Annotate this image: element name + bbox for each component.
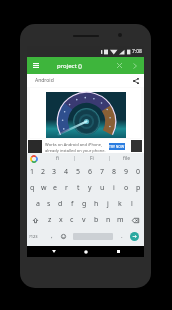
staticText: 8 (112, 167, 117, 177)
button[interactable]: z (44, 212, 55, 228)
button[interactable] (30, 88, 141, 138)
staticText: p (136, 183, 141, 193)
button[interactable]: y (84, 180, 96, 196)
staticText: project () (57, 62, 82, 70)
button[interactable]: 8 (108, 164, 120, 180)
button[interactable]: Close (111, 57, 127, 74)
staticText: TRY NOW (109, 144, 125, 149)
button[interactable]: b (90, 212, 102, 228)
button[interactable]: g (78, 196, 90, 212)
staticText: t (77, 183, 80, 193)
button[interactable]: . (116, 228, 128, 244)
staticText: . (121, 232, 123, 240)
staticText: 3 (52, 167, 57, 177)
button[interactable]: c (66, 212, 78, 228)
button[interactable]: fi (41, 153, 74, 164)
button[interactable]: s (43, 196, 54, 212)
button[interactable]: n (102, 212, 114, 228)
staticText: 2 (41, 167, 46, 177)
button[interactable]: o (120, 180, 132, 196)
staticText: v (82, 215, 86, 225)
button[interactable]: 0 (132, 164, 144, 180)
staticText: file (123, 155, 131, 162)
staticText: z (48, 215, 52, 225)
staticText: s (47, 199, 51, 209)
button[interactable]: 5 (72, 164, 84, 180)
staticText: g (82, 199, 87, 209)
staticText: i (113, 183, 115, 193)
staticText: 0 (136, 167, 141, 177)
button[interactable]: Forward (127, 57, 143, 74)
staticText: already installed on your phone. (45, 148, 106, 153)
button[interactable]: Backspace (126, 212, 144, 228)
staticText: k (118, 199, 122, 209)
button[interactable]: f (66, 196, 78, 212)
button[interactable]: t (72, 180, 84, 196)
staticText: f (71, 199, 74, 209)
button[interactable]: 4 (60, 164, 72, 180)
staticText: u (100, 183, 105, 193)
staticText: 5 (76, 167, 81, 177)
staticText: 6 (88, 167, 93, 177)
staticText: 9 (124, 167, 129, 177)
staticText: h (94, 199, 99, 209)
button[interactable]: k (114, 196, 126, 212)
button[interactable]: Emoji (57, 228, 69, 244)
button[interactable]: j (102, 196, 114, 212)
button[interactable]: 9 (120, 164, 132, 180)
button[interactable]: , (46, 228, 58, 244)
staticText: m (117, 215, 124, 225)
staticText: o (124, 183, 129, 193)
staticText: x (59, 215, 63, 225)
staticText: fi (56, 155, 60, 162)
button[interactable]: 2 (38, 164, 49, 180)
button[interactable]: p (132, 180, 144, 196)
button[interactable]: Home (80, 246, 92, 257)
button[interactable]: Recents (112, 246, 124, 257)
button[interactable]: w (38, 180, 49, 196)
staticText: ?123 (29, 234, 38, 239)
button[interactable]: Shift (27, 212, 44, 228)
button[interactable]: q (27, 180, 38, 196)
staticText: j (107, 199, 109, 209)
button[interactable]: m (114, 212, 126, 228)
staticText: q (30, 183, 35, 193)
button[interactable]: Android (29, 74, 144, 87)
button[interactable]: 1 (27, 164, 38, 180)
button[interactable]: Fi (75, 153, 109, 164)
button[interactable]: d (54, 196, 66, 212)
staticText: n (106, 215, 111, 225)
button[interactable]: i (108, 180, 120, 196)
button[interactable]: 6 (84, 164, 96, 180)
staticText: Works on Android and iPhone, (45, 142, 103, 147)
staticText: , (51, 232, 53, 240)
staticText: 7:08 (132, 48, 142, 55)
button[interactable]: u (96, 180, 108, 196)
button[interactable]: ?123 (27, 228, 39, 244)
button[interactable]: v (78, 212, 90, 228)
staticText: c (70, 215, 74, 225)
button[interactable]: Enter (127, 228, 141, 244)
staticText: a (36, 199, 40, 209)
button[interactable]: TRY NOW (109, 143, 125, 150)
button[interactable]: x (55, 212, 66, 228)
button[interactable]: Share (129, 74, 143, 87)
staticText: 1 (30, 167, 35, 177)
button[interactable]: l (126, 196, 138, 212)
staticText: Android (35, 77, 54, 84)
button[interactable]: a (32, 196, 43, 212)
staticText: e (53, 183, 57, 193)
button[interactable]: 3 (49, 164, 60, 180)
button[interactable]: Works on Android and iPhone, (27, 139, 144, 153)
button[interactable]: e (49, 180, 60, 196)
button[interactable]: Back (48, 246, 60, 257)
button[interactable]: Menu (27, 57, 45, 74)
staticText: l (131, 199, 133, 209)
button[interactable]: 7 (96, 164, 108, 180)
button[interactable]: Google (30, 155, 37, 162)
button[interactable]: h (90, 196, 102, 212)
button[interactable]: r (60, 180, 72, 196)
button[interactable]: file (110, 153, 144, 164)
staticText: b (94, 215, 99, 225)
